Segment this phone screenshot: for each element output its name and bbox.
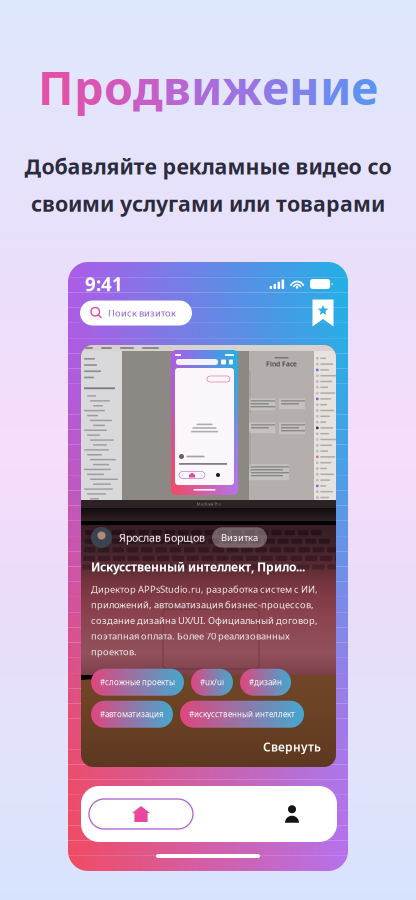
staticText: Поиск визиток xyxy=(108,307,176,319)
button[interactable]: Главная xyxy=(89,799,193,829)
staticText: и xyxy=(191,56,222,118)
staticText: Директор APPsStudio.ru, разработка систе… xyxy=(91,583,318,595)
staticText: #искусственный интеллект xyxy=(189,709,295,719)
button[interactable]: #сложные проекты xyxy=(91,669,184,696)
button[interactable]: #автоматизация xyxy=(91,701,173,728)
staticText: в xyxy=(163,56,191,118)
staticText: Свернуть xyxy=(263,739,321,755)
staticText: и xyxy=(320,56,351,118)
button[interactable]: #дизайн xyxy=(240,669,291,696)
staticText: Визитка xyxy=(221,531,258,544)
button[interactable]: #ux/ui xyxy=(191,669,233,696)
staticText: 9:41 xyxy=(85,272,123,296)
staticText: MacBook Pro xyxy=(196,501,220,507)
staticText: #ux/ui xyxy=(200,677,224,687)
staticText: своими услугами или товарами xyxy=(31,189,385,218)
button[interactable]: Свернуть xyxy=(255,736,321,758)
staticText: д xyxy=(133,56,163,118)
staticText: создание дизайна UX/UI. Официальный дого… xyxy=(91,614,318,626)
staticText: н xyxy=(289,56,320,118)
staticText: Добавляйте рекламные видео со xyxy=(24,152,391,180)
staticText: е xyxy=(262,56,289,118)
staticText: #автоматизация xyxy=(100,709,164,719)
staticText: о xyxy=(104,56,133,118)
staticText: Find Face xyxy=(266,359,297,368)
staticText: е xyxy=(351,56,378,118)
staticText: #сложные проекты xyxy=(100,677,175,687)
staticText: поэтапная оплата. Более 70 реализованных xyxy=(91,630,290,642)
button[interactable]: Поиск визиток xyxy=(80,300,192,325)
staticText: Ярослав Борщов xyxy=(119,530,205,545)
staticText: П xyxy=(38,56,74,118)
button[interactable]: Сохранённые xyxy=(312,299,334,327)
staticText: Искусственный интеллект, Прило... xyxy=(91,559,305,575)
staticText: #дизайн xyxy=(249,677,282,687)
button[interactable]: #искусственный интеллект xyxy=(180,701,304,728)
staticText: приложений, автоматизация бизнес-процесс… xyxy=(91,598,314,611)
staticText: проектов. xyxy=(91,645,137,658)
button[interactable]: Профиль xyxy=(255,799,329,829)
staticText: р xyxy=(74,56,104,118)
staticText: ж xyxy=(222,56,262,118)
button[interactable]: Визитка xyxy=(212,527,267,548)
